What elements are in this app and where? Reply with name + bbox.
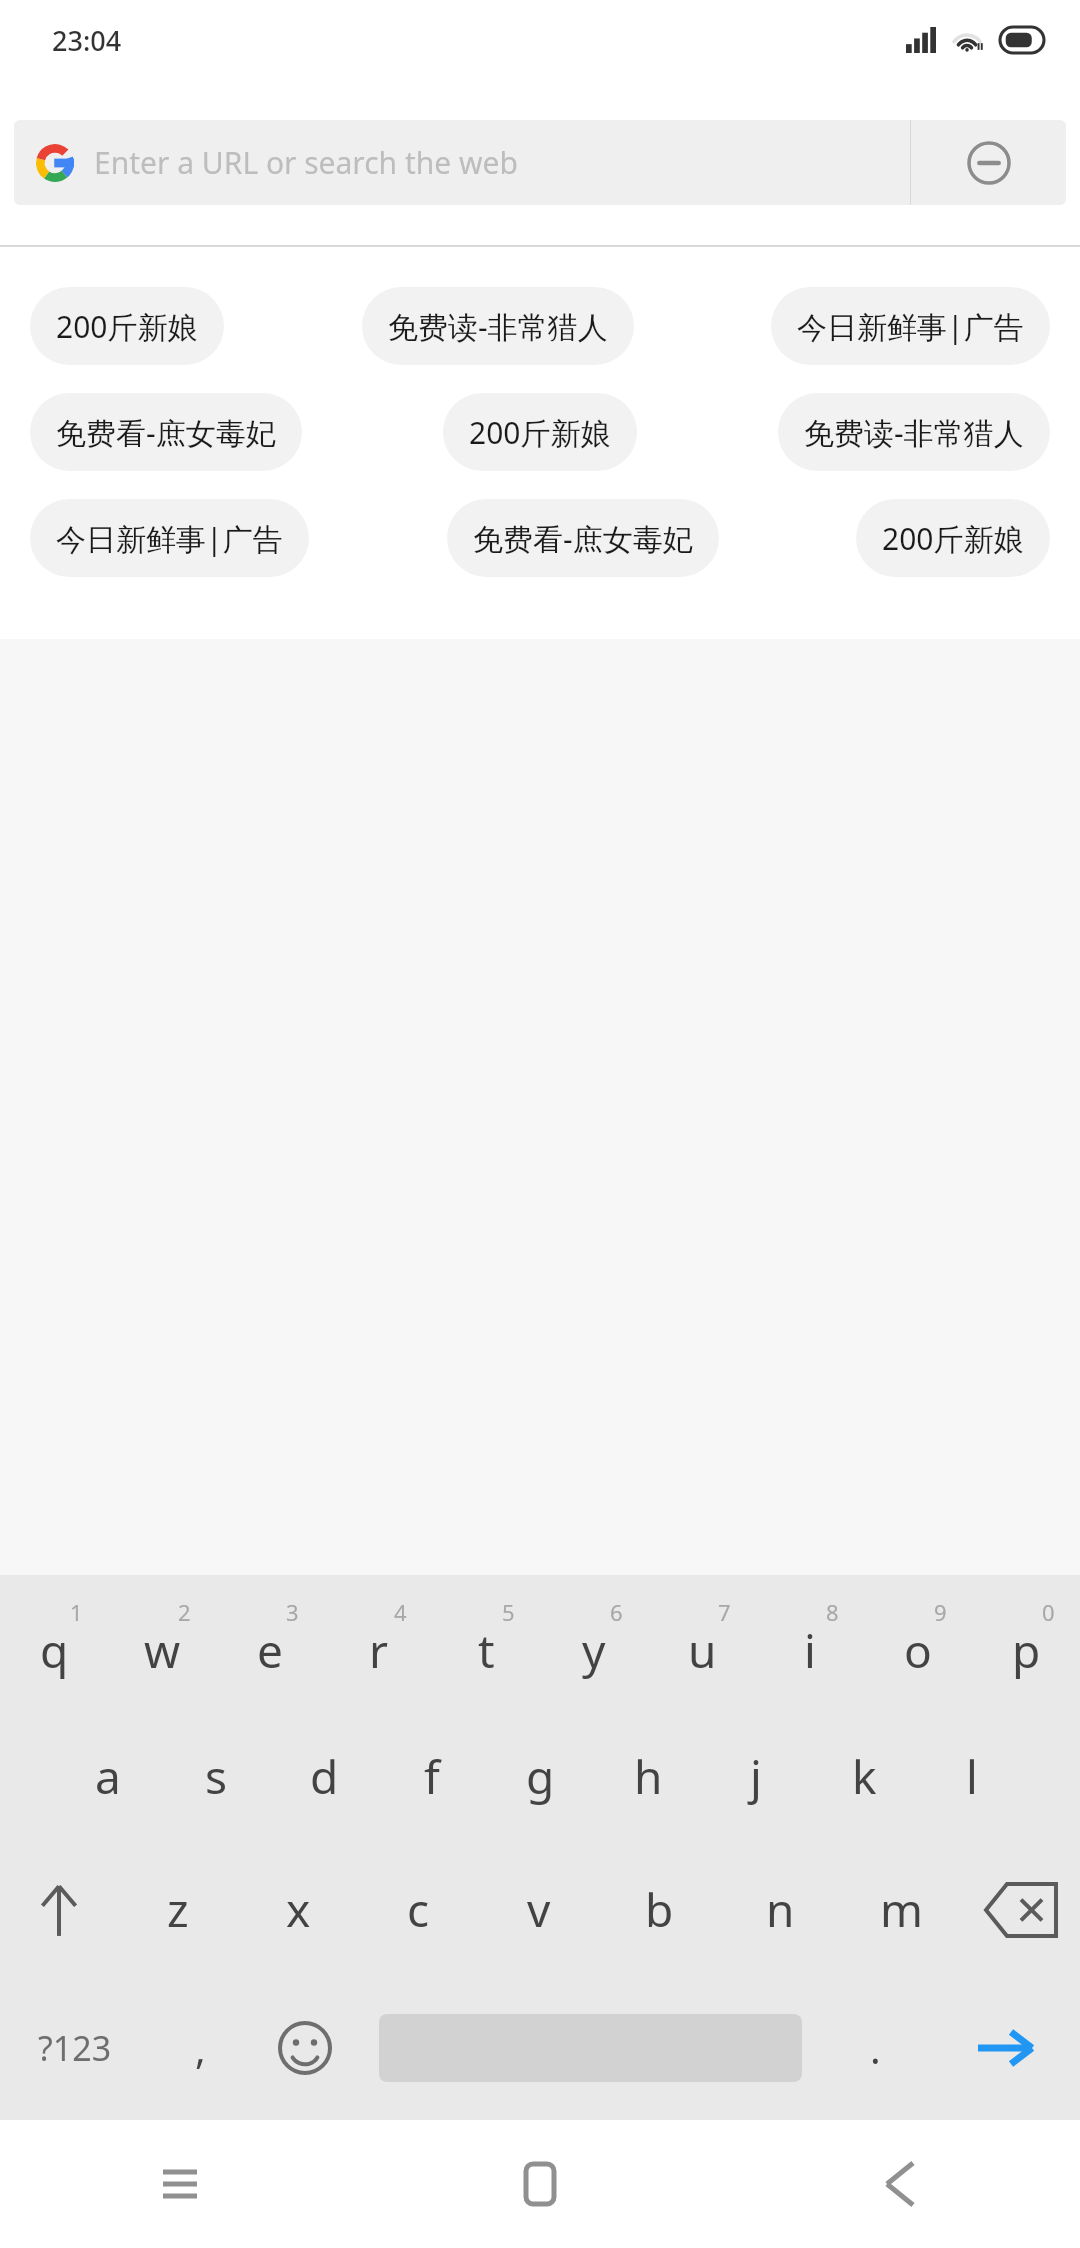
staticText: x [286, 1878, 311, 1941]
button[interactable]: f [378, 1710, 486, 1843]
staticText: 7 [718, 1597, 731, 1627]
staticText: m [880, 1878, 924, 1941]
button[interactable]: 4 [324, 1575, 432, 1710]
staticText: 5 [502, 1597, 515, 1627]
button[interactable]: a [54, 1710, 162, 1843]
button[interactable]: Home [360, 2120, 720, 2248]
button[interactable]: m [841, 1843, 962, 1976]
button[interactable]: 免费读-非常猎人 [778, 393, 1050, 471]
staticText: j [750, 1745, 762, 1808]
staticText: h [634, 1745, 663, 1808]
staticText: 免费读-非常猎人 [388, 306, 608, 347]
staticText: d [310, 1745, 339, 1808]
button[interactable]: 免费读-非常猎人 [362, 287, 634, 365]
staticText: g [526, 1745, 555, 1808]
staticText: f [424, 1745, 440, 1808]
button[interactable]: 9 [864, 1575, 972, 1710]
staticText: i [804, 1619, 816, 1682]
button[interactable]: 200斤新娘 [443, 393, 637, 471]
button[interactable]: n [720, 1843, 841, 1976]
staticText: , [195, 2021, 206, 2075]
staticText: o [904, 1619, 932, 1682]
button[interactable]: 今日新鲜事|广告 [771, 287, 1050, 365]
button[interactable]: b [599, 1843, 720, 1976]
staticText: t [478, 1619, 495, 1682]
button[interactable]: h [594, 1710, 702, 1843]
staticText: 4 [394, 1597, 407, 1627]
staticText: c [407, 1878, 430, 1941]
staticText: 今日新鲜事|广告 [797, 306, 1024, 347]
staticText: w [144, 1619, 181, 1682]
button[interactable]: l [918, 1710, 1026, 1843]
staticText: b [645, 1878, 674, 1941]
staticText: 0 [1042, 1597, 1055, 1627]
staticText: a [95, 1745, 121, 1808]
button[interactable]: d [270, 1710, 378, 1843]
button[interactable]: Backspace [962, 1843, 1080, 1976]
staticText: 9 [934, 1597, 947, 1627]
button[interactable]: 1 [0, 1575, 108, 1710]
button[interactable]: c [358, 1843, 478, 1976]
button[interactable]: Shift [0, 1843, 118, 1976]
button[interactable]: ?123 [0, 1976, 150, 2120]
staticText: 免费看-庶女毒妃 [473, 518, 693, 559]
staticText: 200斤新娘 [56, 306, 198, 347]
button[interactable]: 6 [540, 1575, 648, 1710]
staticText: Enter a URL or search the web [94, 142, 518, 183]
button[interactable]: 5 [432, 1575, 540, 1710]
button[interactable]: , [150, 1976, 250, 2120]
button[interactable]: Back [720, 2120, 1080, 2248]
button[interactable]: 200斤新娘 [856, 499, 1050, 577]
staticText: n [766, 1878, 795, 1941]
button[interactable]: Collapse [911, 120, 1066, 205]
staticText: . [870, 2021, 881, 2075]
button[interactable]: Recents [0, 2120, 360, 2248]
button[interactable]: Space [360, 1976, 820, 2120]
button[interactable]: 2 [108, 1575, 216, 1710]
staticText: 1 [70, 1597, 83, 1627]
button[interactable]: 今日新鲜事|广告 [30, 499, 309, 577]
staticText: 23:04 [52, 22, 122, 59]
staticText: y [582, 1619, 606, 1682]
staticText: z [167, 1878, 189, 1941]
staticText: 今日新鲜事|广告 [56, 518, 283, 559]
staticText: l [966, 1745, 978, 1808]
staticText: e [257, 1619, 283, 1682]
button[interactable]: Enter a URL or search the web [14, 120, 910, 205]
staticText: 200斤新娘 [469, 412, 611, 453]
staticText: 200斤新娘 [882, 518, 1024, 559]
button[interactable]: v [478, 1843, 599, 1976]
staticText: r [369, 1619, 388, 1682]
button[interactable]: 0 [972, 1575, 1080, 1710]
button[interactable]: k [810, 1710, 918, 1843]
staticText: v [527, 1878, 551, 1941]
button[interactable]: 7 [648, 1575, 756, 1710]
button[interactable]: Go [930, 1976, 1080, 2120]
button[interactable]: s [162, 1710, 270, 1843]
button[interactable]: z [118, 1843, 238, 1976]
staticText: ?123 [38, 2025, 112, 2071]
button[interactable]: 8 [756, 1575, 864, 1710]
button[interactable]: 200斤新娘 [30, 287, 224, 365]
staticText: 8 [826, 1597, 839, 1627]
button[interactable]: . [820, 1976, 930, 2120]
staticText: 免费看-庶女毒妃 [56, 412, 276, 453]
button[interactable]: x [238, 1843, 358, 1976]
button[interactable]: 3 [216, 1575, 324, 1710]
staticText: 2 [178, 1597, 191, 1627]
button[interactable]: Emoji [250, 1976, 360, 2120]
staticText: k [852, 1745, 877, 1808]
button[interactable]: j [702, 1710, 810, 1843]
staticText: p [1012, 1619, 1041, 1682]
staticText: 3 [286, 1597, 299, 1627]
staticText: u [688, 1619, 717, 1682]
staticText: 免费读-非常猎人 [804, 412, 1024, 453]
button[interactable]: g [486, 1710, 594, 1843]
button[interactable]: 免费看-庶女毒妃 [447, 499, 719, 577]
staticText: 6 [610, 1597, 623, 1627]
staticText: s [205, 1745, 228, 1808]
staticText: q [40, 1619, 69, 1682]
button[interactable]: 免费看-庶女毒妃 [30, 393, 302, 471]
